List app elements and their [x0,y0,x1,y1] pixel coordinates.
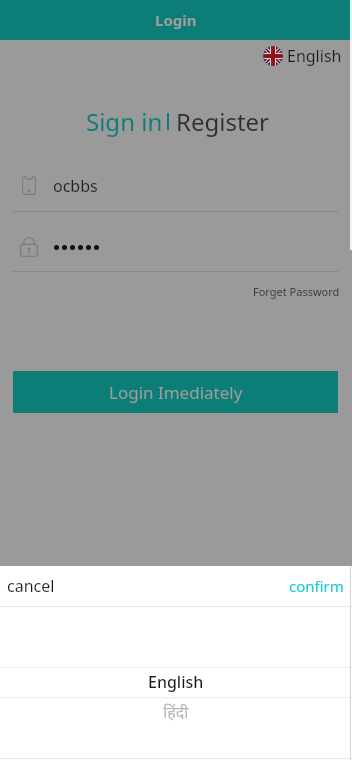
button[interactable]: cancel [0,567,69,605]
button[interactable]: Login Imediately [13,371,338,413]
button[interactable]: हिंदी [163,701,189,723]
button[interactable]: confirm [275,568,352,604]
staticText: Login [155,10,197,30]
button[interactable]: Register [176,105,270,138]
button[interactable]: English [148,671,204,693]
staticText: English [287,45,342,67]
staticText: cancel [7,575,55,597]
staticText: Login Imediately [109,381,243,404]
staticText: confirm [289,576,344,596]
staticText: ocbbs [53,175,98,197]
button[interactable]: English language [263,45,342,67]
button[interactable]: Sign in [86,105,163,138]
other: English language [263,46,283,66]
button[interactable]: Forget Password [253,284,340,299]
